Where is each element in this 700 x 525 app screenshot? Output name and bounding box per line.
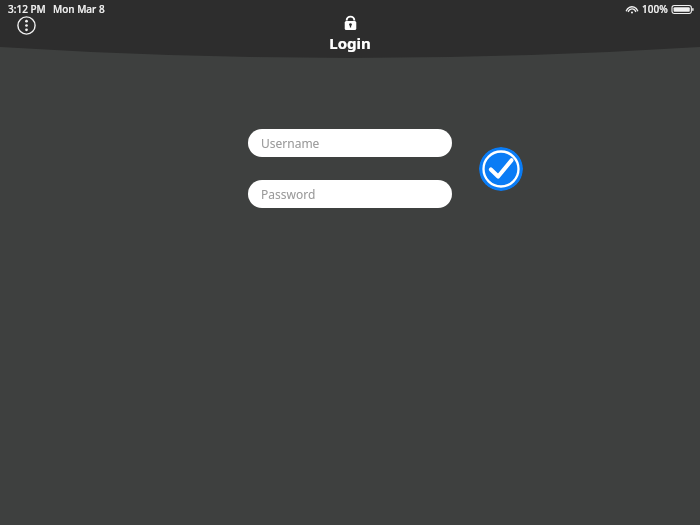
button[interactable]: Password — [248, 180, 452, 208]
staticText: 3:12 PM — [8, 2, 46, 16]
button[interactable]: More options — [9, 8, 43, 42]
staticText: Login — [329, 33, 371, 53]
staticText: Username — [261, 135, 320, 151]
button[interactable]: Submit login — [479, 147, 523, 191]
button[interactable]: Username — [248, 129, 452, 157]
staticText: Password — [261, 186, 316, 202]
staticText: Mon Mar 8 — [53, 2, 105, 16]
staticText: 100% — [642, 2, 668, 16]
